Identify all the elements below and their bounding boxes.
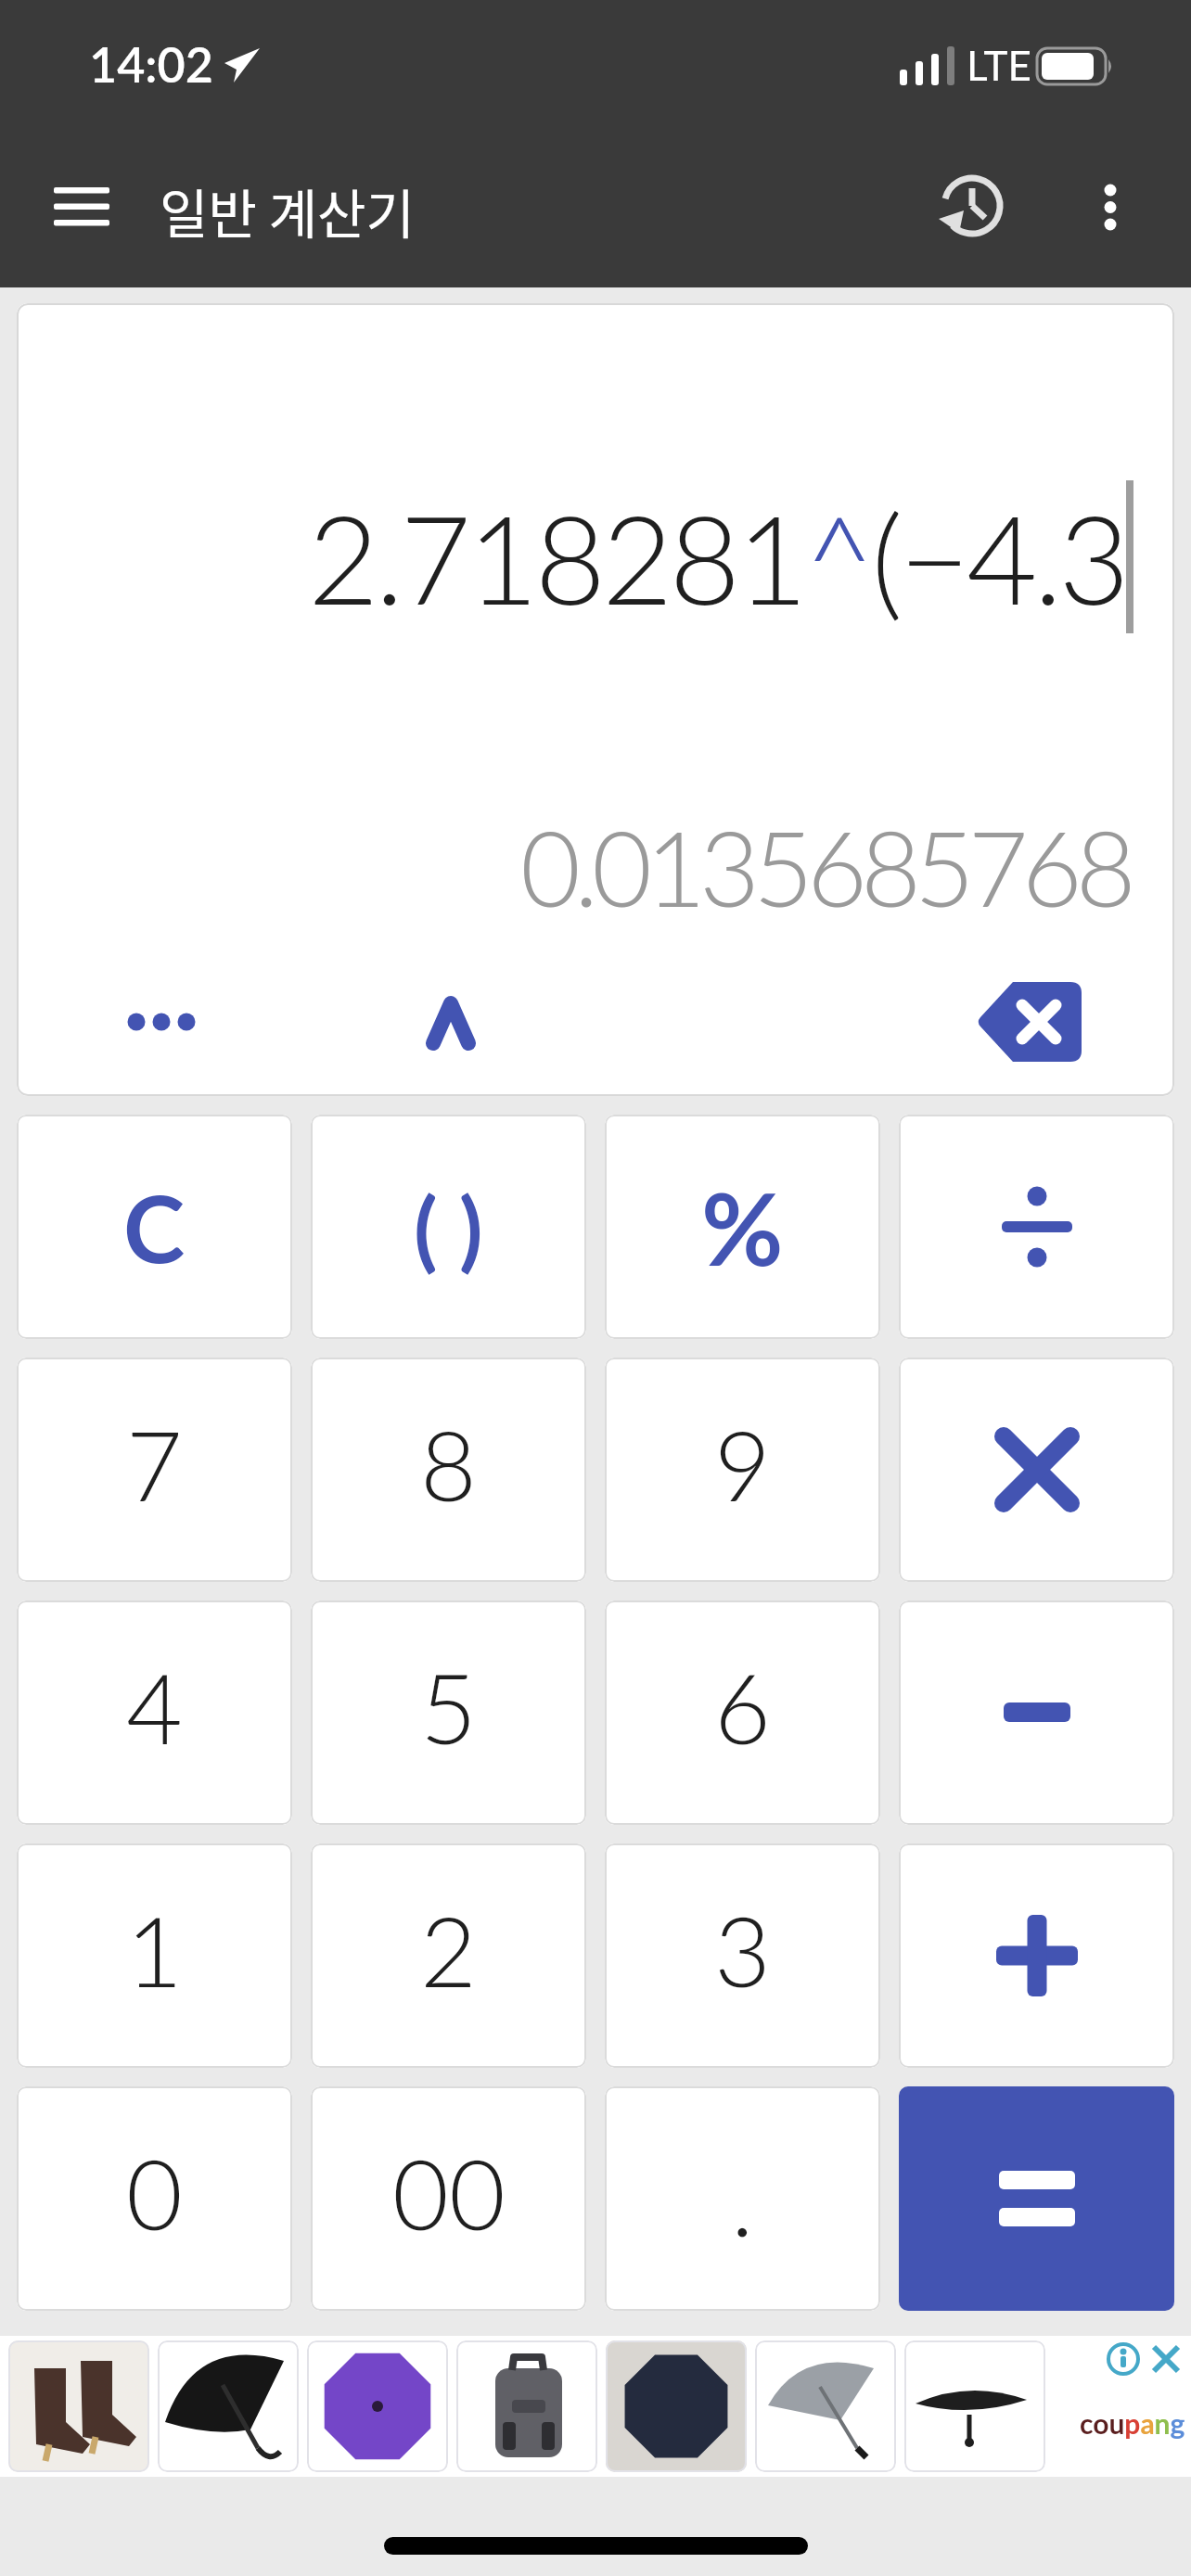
button[interactable] — [400, 980, 502, 1064]
staticText: 7 — [126, 1405, 183, 1522]
button[interactable]: 8 — [311, 1358, 586, 1582]
button[interactable] — [899, 1843, 1174, 2068]
staticText: 0.0135685768 — [520, 804, 1130, 928]
button[interactable]: 00 — [311, 2086, 586, 2311]
button[interactable]: 6 — [605, 1600, 880, 1825]
button[interactable] — [899, 1115, 1174, 1339]
button[interactable] — [1150, 2340, 1187, 2378]
button[interactable] — [1083, 172, 1139, 239]
button[interactable]: 7 — [17, 1358, 292, 1582]
button[interactable] — [904, 2340, 1045, 2472]
button[interactable] — [1105, 2340, 1144, 2378]
staticText: 5 — [420, 1648, 477, 1765]
button[interactable] — [606, 2340, 747, 2472]
button[interactable]: 9 — [605, 1358, 880, 1582]
staticText: C — [123, 1171, 186, 1282]
staticText: ( ) — [414, 1175, 483, 1280]
button[interactable]: 5 — [311, 1600, 586, 1825]
button[interactable] — [755, 2340, 896, 2472]
staticText: 9 — [714, 1405, 771, 1522]
staticText: coupang — [1080, 2406, 1185, 2440]
button[interactable]: 0 — [17, 2086, 292, 2311]
staticText: LTE — [967, 41, 1031, 90]
button[interactable] — [899, 1358, 1174, 1582]
button[interactable]: 3 — [605, 1843, 880, 2068]
staticText: 2 — [420, 1891, 477, 2008]
staticText: % — [701, 1167, 784, 1287]
button[interactable]: C — [17, 1115, 292, 1339]
button[interactable]: 4 — [17, 1600, 292, 1825]
staticText: 8 — [420, 1405, 477, 1522]
button[interactable] — [37, 171, 126, 241]
staticText: 4 — [126, 1648, 183, 1765]
staticText: 00 — [392, 2134, 506, 2251]
button[interactable]: 2 — [311, 1843, 586, 2068]
button[interactable] — [456, 2340, 597, 2472]
staticText: 3 — [714, 1891, 771, 2008]
staticText: 일반 계산기 — [160, 172, 415, 249]
staticText: 0 — [126, 2134, 183, 2251]
staticText: . — [731, 2140, 754, 2257]
staticText: 6 — [714, 1648, 771, 1765]
button[interactable]: . — [605, 2086, 880, 2311]
button[interactable] — [158, 2340, 299, 2472]
button[interactable] — [110, 989, 212, 1054]
button[interactable] — [899, 2086, 1174, 2311]
staticText: 14:02 — [89, 35, 213, 93]
button[interactable]: 1 — [17, 1843, 292, 2068]
staticText: 1 — [126, 1891, 183, 2008]
button[interactable] — [935, 169, 1009, 243]
button[interactable]: % — [605, 1115, 880, 1339]
button[interactable]: ( ) — [311, 1115, 586, 1339]
button[interactable] — [8, 2340, 149, 2472]
button[interactable] — [307, 2340, 448, 2472]
button[interactable] — [899, 1600, 1174, 1825]
button[interactable] — [969, 976, 1090, 1068]
staticText: 2.718281^(−4.3 — [308, 484, 1126, 631]
